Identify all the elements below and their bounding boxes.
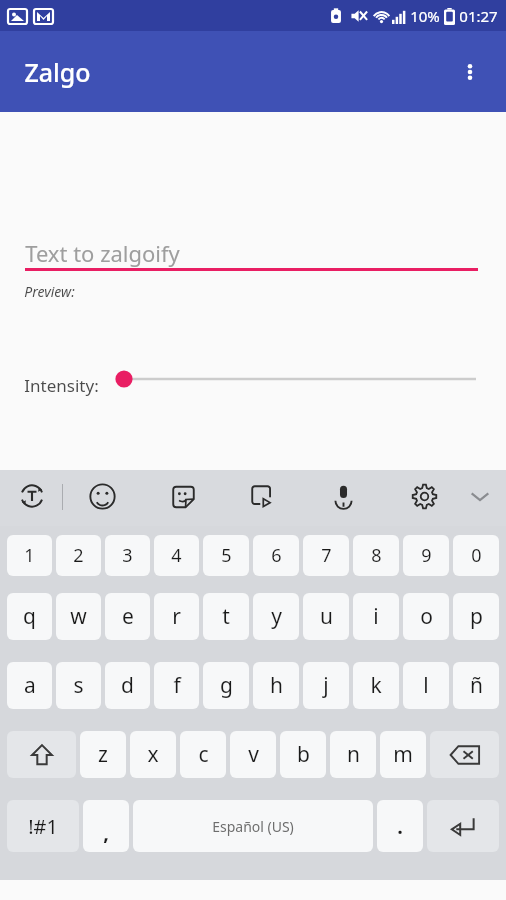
- button[interactable]: Stickers: [164, 477, 202, 515]
- button[interactable]: k: [353, 662, 399, 709]
- button[interactable]: Voice input: [324, 477, 362, 515]
- staticText: w: [70, 602, 87, 631]
- button[interactable]: 1: [7, 535, 52, 576]
- button[interactable]: i: [353, 593, 399, 640]
- button[interactable]: t: [203, 593, 249, 640]
- staticText: d: [121, 671, 134, 700]
- button[interactable]: l: [403, 662, 449, 709]
- staticText: s: [73, 671, 84, 700]
- staticText: j: [323, 671, 329, 700]
- staticText: 7: [321, 543, 332, 568]
- staticText: z: [98, 740, 108, 769]
- button[interactable]: 5: [203, 535, 249, 576]
- staticText: ,: [103, 819, 109, 846]
- staticText: 4: [171, 543, 182, 568]
- button[interactable]: c: [180, 731, 226, 778]
- button[interactable]: ñ: [453, 662, 499, 709]
- button[interactable]: n: [330, 731, 376, 778]
- staticText: m: [393, 740, 413, 769]
- staticText: Español (US): [212, 817, 294, 836]
- button[interactable]: GIF: [243, 477, 281, 515]
- button[interactable]: Intensity slider: [110, 365, 476, 393]
- staticText: x: [147, 740, 159, 769]
- button[interactable]: h: [253, 662, 299, 709]
- button[interactable]: Español (US): [133, 800, 373, 852]
- staticText: 6: [271, 543, 282, 568]
- staticText: 0: [471, 543, 482, 568]
- button[interactable]: 6: [253, 535, 299, 576]
- button[interactable]: w: [56, 593, 101, 640]
- staticText: !#1: [28, 813, 58, 840]
- button[interactable]: !#1: [7, 800, 79, 852]
- button[interactable]: y: [253, 593, 299, 640]
- staticText: 5: [221, 543, 232, 568]
- staticText: k: [370, 671, 382, 700]
- button[interactable]: e: [105, 593, 150, 640]
- button[interactable]: 3: [105, 535, 150, 576]
- button[interactable]: 9: [403, 535, 449, 576]
- button[interactable]: Emoji: [83, 477, 121, 515]
- button[interactable]: o: [403, 593, 449, 640]
- staticText: q: [23, 602, 36, 631]
- staticText: h: [270, 671, 283, 700]
- button[interactable]: j: [303, 662, 349, 709]
- button[interactable]: Hide keyboard: [461, 477, 499, 515]
- staticText: t: [222, 602, 230, 631]
- button[interactable]: 4: [154, 535, 199, 576]
- staticText: u: [320, 602, 333, 631]
- staticText: p: [470, 602, 483, 631]
- staticText: i: [373, 602, 379, 631]
- button[interactable]: d: [105, 662, 150, 709]
- button[interactable]: Backspace: [430, 731, 499, 778]
- button[interactable]: q: [7, 593, 52, 640]
- button[interactable]: b: [280, 731, 326, 778]
- staticText: .: [397, 813, 403, 840]
- staticText: o: [420, 602, 433, 631]
- button[interactable]: 0: [453, 535, 499, 576]
- button[interactable]: p: [453, 593, 499, 640]
- staticText: 01:27: [459, 6, 498, 26]
- button[interactable]: Enter: [427, 800, 499, 852]
- button[interactable]: Shift: [7, 731, 76, 778]
- button[interactable]: x: [130, 731, 176, 778]
- button[interactable]: add upwards: [24, 564, 164, 588]
- button[interactable]: More options: [446, 48, 494, 96]
- button[interactable]: r: [154, 593, 199, 640]
- button[interactable]: u: [303, 593, 349, 640]
- staticText: n: [347, 740, 360, 769]
- staticText: 3: [122, 543, 133, 568]
- staticText: 9: [421, 543, 432, 568]
- button[interactable]: a: [7, 662, 52, 709]
- staticText: f: [173, 671, 181, 700]
- staticText: g: [220, 671, 233, 700]
- staticText: a: [24, 671, 36, 700]
- staticText: 2: [73, 543, 84, 568]
- button[interactable]: f: [154, 662, 199, 709]
- staticText: l: [423, 671, 429, 700]
- staticText: r: [172, 602, 181, 631]
- staticText: ñ: [470, 671, 483, 700]
- staticText: Preview:: [24, 282, 75, 301]
- button[interactable]: s: [56, 662, 101, 709]
- staticText: add upwards: [60, 565, 164, 588]
- staticText: Text to zalgoify: [25, 238, 180, 268]
- staticText: y: [271, 602, 282, 631]
- button[interactable]: v: [230, 731, 276, 778]
- staticText: c: [198, 740, 209, 769]
- button[interactable]: m: [380, 731, 426, 778]
- button[interactable]: 2: [56, 535, 101, 576]
- button[interactable]: 7: [303, 535, 349, 576]
- button[interactable]: Settings: [405, 477, 443, 515]
- button[interactable]: Translate: [13, 477, 51, 515]
- staticText: Zalgo: [24, 55, 91, 89]
- button[interactable]: 8: [353, 535, 399, 576]
- staticText: Intensity:: [24, 374, 99, 397]
- button[interactable]: g: [203, 662, 249, 709]
- staticText: b: [297, 740, 310, 769]
- button[interactable]: ,: [83, 800, 129, 852]
- staticText: 8: [371, 543, 382, 568]
- staticText: 1: [24, 543, 35, 568]
- staticText: v: [248, 740, 259, 769]
- button[interactable]: .: [377, 800, 423, 852]
- button[interactable]: z: [80, 731, 126, 778]
